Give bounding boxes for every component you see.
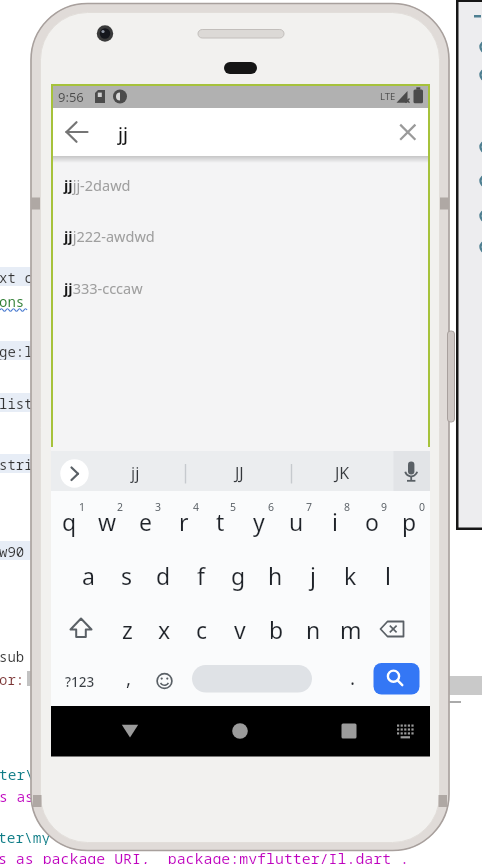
staticText: jj xyxy=(131,462,140,484)
button[interactable]: jj xyxy=(93,118,153,148)
staticText: . xyxy=(350,665,356,691)
button[interactable]: v xyxy=(221,603,258,655)
staticText: ons xyxy=(0,292,25,310)
button[interactable] xyxy=(149,655,180,707)
button[interactable] xyxy=(56,112,96,152)
button[interactable]: ?123 xyxy=(60,656,100,708)
button[interactable]: jjjj-2dawd xyxy=(64,160,404,210)
staticText: d xyxy=(156,560,171,591)
button[interactable]: , xyxy=(114,652,144,704)
staticText: 6 xyxy=(268,500,275,514)
button[interactable]: g xyxy=(220,549,257,601)
button[interactable]: y xyxy=(240,495,277,547)
staticText: xt c xyxy=(0,268,33,286)
button[interactable]: k xyxy=(332,549,369,601)
button[interactable] xyxy=(62,603,100,655)
button[interactable] xyxy=(220,711,260,751)
staticText: jjjj-2dawd xyxy=(64,175,131,195)
button[interactable]: z xyxy=(109,603,146,655)
staticText: j xyxy=(310,560,316,591)
button[interactable]: l xyxy=(369,549,406,601)
button[interactable]: JK xyxy=(309,453,375,493)
button[interactable] xyxy=(394,451,430,491)
button[interactable]: f xyxy=(182,549,219,601)
staticText: v xyxy=(234,614,246,645)
staticText: 1 xyxy=(79,500,86,514)
button[interactable] xyxy=(110,711,150,751)
button[interactable]: i xyxy=(316,495,353,547)
button[interactable]: x xyxy=(146,603,183,655)
staticText: s xyxy=(121,560,133,591)
staticText: 2 xyxy=(117,500,124,514)
button[interactable]: jj333-cccaw xyxy=(64,263,404,313)
button[interactable]: q xyxy=(51,495,88,547)
button[interactable]: JJ xyxy=(206,453,272,493)
staticText: ?123 xyxy=(65,673,95,691)
staticText: jj xyxy=(118,121,128,146)
staticText: x xyxy=(158,614,171,645)
staticText: q xyxy=(62,506,77,537)
button[interactable] xyxy=(391,711,431,751)
staticText: list xyxy=(0,394,33,412)
button[interactable]: b xyxy=(258,603,295,655)
staticText: JJ xyxy=(235,462,244,484)
button[interactable] xyxy=(192,665,312,693)
button[interactable]: jjj222-awdwd xyxy=(64,211,404,261)
button[interactable]: . xyxy=(338,652,368,704)
staticText: y xyxy=(253,506,265,537)
staticText: 7 xyxy=(306,500,313,514)
button[interactable]: r xyxy=(165,495,202,547)
staticText: ge:l xyxy=(0,342,33,360)
staticText: 3 xyxy=(155,500,162,514)
staticText: jjj222-awdwd xyxy=(64,226,155,246)
button[interactable] xyxy=(392,112,430,152)
staticText: 8 xyxy=(344,500,351,514)
button[interactable]: u xyxy=(278,495,315,547)
button[interactable]: w xyxy=(89,495,126,547)
staticText: a xyxy=(82,560,95,591)
staticText: k xyxy=(344,560,357,591)
staticText: LTE xyxy=(380,90,396,103)
staticText: r xyxy=(179,506,189,537)
staticText: u xyxy=(289,506,304,537)
button[interactable]: d xyxy=(145,549,182,601)
staticText: t xyxy=(216,506,225,537)
staticText: h xyxy=(268,560,283,591)
staticText: m xyxy=(340,614,362,645)
staticText: o xyxy=(365,506,379,537)
staticText: ter\my xyxy=(0,827,51,845)
staticText: 5 xyxy=(230,500,237,514)
button[interactable]: o xyxy=(353,495,390,547)
staticText: c xyxy=(196,614,208,645)
button[interactable] xyxy=(60,459,89,488)
button[interactable]: j xyxy=(294,549,331,601)
staticText: sub xyxy=(0,647,25,665)
staticText: s as package URI, package:myflutter/Il.d… xyxy=(0,848,409,864)
button[interactable]: jj xyxy=(102,453,168,493)
staticText: ter\ xyxy=(0,764,34,782)
staticText: , xyxy=(126,665,132,691)
staticText: 9:56 xyxy=(58,88,84,106)
button[interactable] xyxy=(373,603,411,655)
staticText: JK xyxy=(335,462,350,484)
button[interactable]: a xyxy=(70,549,107,601)
staticText: 9 xyxy=(381,500,388,514)
button[interactable] xyxy=(374,663,420,695)
button[interactable]: n xyxy=(295,603,332,655)
button[interactable]: s xyxy=(108,549,145,601)
staticText: 0 xyxy=(419,500,426,514)
button[interactable]: t xyxy=(202,495,239,547)
staticText: i xyxy=(332,506,338,537)
staticText: stri xyxy=(0,455,33,473)
button[interactable]: e xyxy=(127,495,164,547)
button[interactable] xyxy=(329,711,369,751)
staticText: g xyxy=(231,560,246,591)
staticText: n xyxy=(306,614,321,645)
button[interactable]: p xyxy=(391,495,428,547)
staticText: p xyxy=(402,506,417,537)
button[interactable]: h xyxy=(257,549,294,601)
staticText: z xyxy=(122,614,133,645)
button[interactable]: c xyxy=(183,603,220,655)
staticText: 4 xyxy=(193,500,200,514)
button[interactable]: m xyxy=(332,603,369,655)
